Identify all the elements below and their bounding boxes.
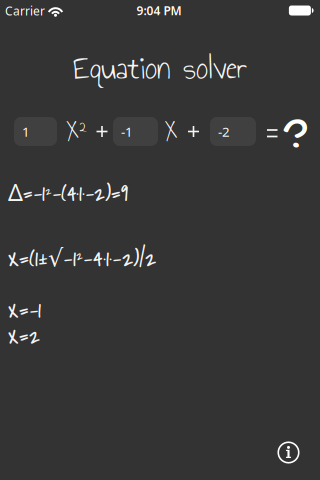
button[interactable]: Solve (282, 117, 310, 161)
staticText: X=(1±√-1²-4·1·-2)/2 (8, 243, 156, 275)
button[interactable]: Info (277, 441, 299, 463)
button[interactable]: Coefficient -1 (113, 117, 158, 146)
button[interactable]: Coefficient -2 (210, 117, 256, 146)
staticText: 9:04 PM (136, 2, 181, 18)
staticText: Equation solver (73, 44, 247, 92)
staticText: 2 (79, 115, 87, 138)
staticText: -1 (121, 123, 133, 140)
staticText: X (66, 111, 79, 150)
button[interactable]: Coefficient 1 (14, 117, 57, 146)
staticText: 1 (22, 123, 30, 140)
staticText: -2 (218, 123, 230, 140)
staticText: X (164, 111, 177, 150)
staticText: Carrier (5, 3, 45, 19)
staticText: X=2 (8, 321, 40, 352)
staticText: ? (284, 111, 307, 166)
staticText: X=-1 (8, 295, 41, 326)
staticText: Δ=-1²-(4·1·-2)=9 (8, 176, 128, 210)
